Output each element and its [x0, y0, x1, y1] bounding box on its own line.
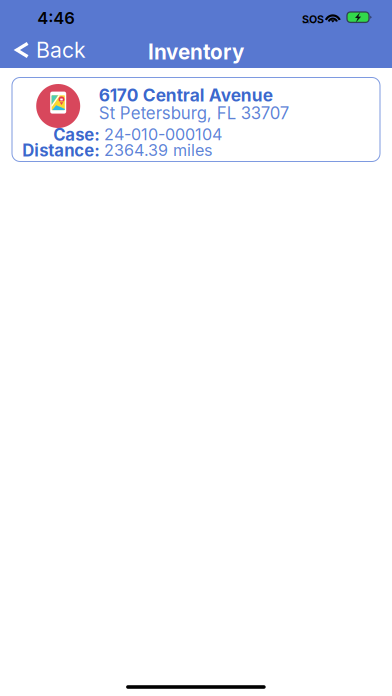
staticText: Inventory [148, 39, 244, 64]
staticText: 24-010-000104 [104, 125, 222, 144]
staticText: St Petersburg, FL 33707 [99, 103, 290, 123]
staticText: 6170 Central Avenue [99, 85, 273, 106]
staticText: SOS [302, 13, 324, 26]
staticText: Back [36, 37, 86, 63]
button[interactable]: Back [0, 33, 98, 67]
button[interactable]: 6170 Central Avenue [12, 77, 380, 161]
staticText: Case: [53, 125, 100, 145]
staticText: 4:46 [37, 8, 75, 28]
staticText: Distance: [22, 140, 100, 160]
staticText: 2364.39 miles [104, 140, 213, 160]
